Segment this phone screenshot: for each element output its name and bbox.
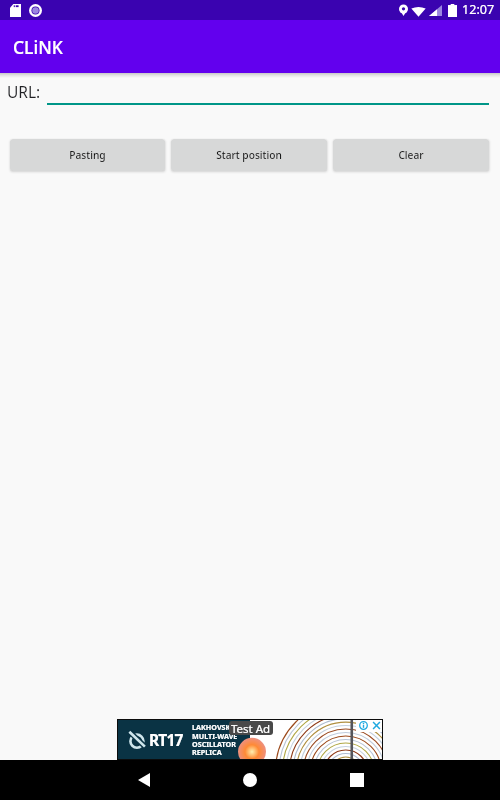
button[interactable]: Clear [333,139,489,171]
staticText: Start position [216,148,282,162]
button[interactable]: Start position [171,139,327,171]
button[interactable]: Recent apps [337,760,377,800]
staticText: MULTI-WAVE [192,731,238,741]
staticText: URL: [7,81,41,102]
button[interactable]: Home [230,760,270,800]
button[interactable]: Back [124,760,164,800]
other: Close ad [372,721,381,730]
staticText: Pasting [69,148,106,162]
button[interactable]: URL input field [47,81,489,105]
staticText: LAKHOVSKI [192,722,234,732]
staticText: RT17 [149,729,183,750]
button[interactable]: RT17 [117,719,383,760]
button[interactable]: Pasting [10,139,165,171]
staticText: OSCILLATOR [192,739,236,749]
other: Ad info [359,721,368,730]
staticText: Test Ad [231,721,271,735]
staticText: CLiNK [13,35,63,59]
staticText: REPLICA [192,747,222,757]
staticText: Clear [398,148,424,162]
staticText: 12:07 [462,1,495,18]
